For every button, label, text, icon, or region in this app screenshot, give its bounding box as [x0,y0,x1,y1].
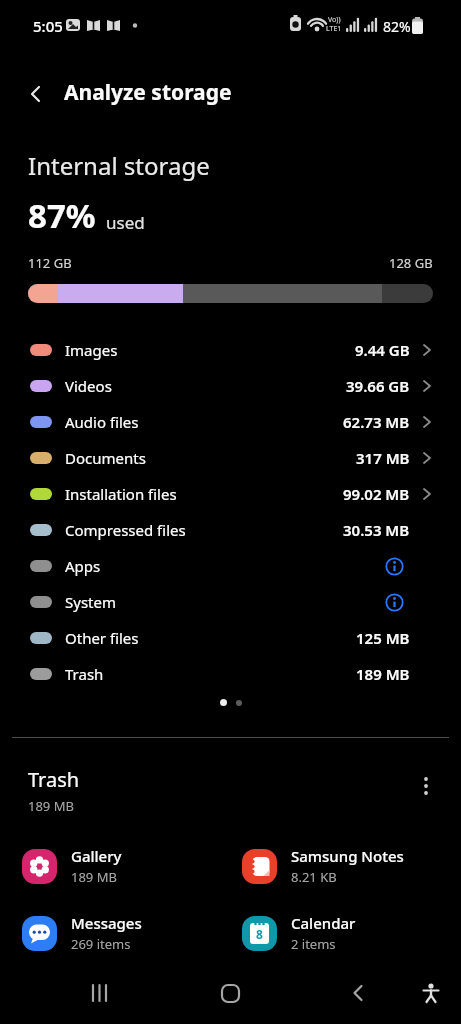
staticText: Analyze storage [64,78,232,107]
staticText: Other files [65,628,139,648]
staticText: 9.44 GB [355,340,410,360]
button[interactable] [18,76,54,112]
button[interactable]: 8 [242,913,447,953]
button[interactable]: Documents [0,440,461,476]
button[interactable]: Apps [0,548,461,584]
staticText: Calendar [291,913,356,933]
button[interactable]: Samsung Notes [242,846,447,886]
button[interactable]: Compressed files [0,512,461,548]
staticText: 128 GB [389,254,433,272]
staticText: Internal storage [28,149,210,182]
staticText: Gallery [71,846,122,866]
staticText: 269 items [71,935,131,953]
staticText: Images [65,340,118,360]
staticText: System [65,592,116,612]
staticText: used [106,211,145,234]
button[interactable]: Installation files [0,476,461,512]
button[interactable] [76,969,124,1017]
staticText: 30.53 MB [343,520,410,540]
staticText: 112 GB [28,254,72,272]
staticText: 189 MB [356,664,410,684]
staticText: Audio files [65,412,139,432]
button[interactable]: Videos [0,368,461,404]
staticText: Videos [65,376,112,396]
staticText: Trash [28,766,80,793]
staticText: Trash [65,664,104,684]
button[interactable]: Audio files [0,404,461,440]
staticText: 82% [383,17,411,36]
staticText: 39.66 GB [346,376,410,396]
staticText: 189 MB [28,797,74,815]
button[interactable]: Trash [0,656,461,692]
button[interactable] [408,768,444,804]
staticText: 317 MB [356,448,410,468]
staticText: 5:05 [33,16,63,36]
button[interactable]: System [0,584,461,620]
staticText: Vo)) [328,15,341,25]
staticText: 8 [256,926,263,942]
button[interactable] [407,969,455,1017]
staticText: 8.21 KB [291,868,337,886]
button[interactable]: Gallery [22,846,227,886]
button[interactable]: Other files [0,620,461,656]
staticText: 99.02 MB [343,484,410,504]
staticText: 2 items [291,935,336,953]
staticText: Samsung Notes [291,846,404,866]
staticText: Documents [65,448,146,468]
staticText: 189 MB [71,868,117,886]
staticText: Compressed files [65,520,186,540]
staticText: 125 MB [356,628,410,648]
button[interactable] [334,969,382,1017]
staticText: 62.73 MB [343,412,410,432]
button[interactable]: Messages [22,913,227,953]
staticText: Apps [65,556,101,576]
staticText: 87% [28,193,96,238]
staticText: Messages [71,913,142,933]
staticText: Installation files [65,484,177,504]
button[interactable] [206,969,254,1017]
button[interactable]: Images [0,332,461,368]
staticText: LTE1 [326,24,342,34]
